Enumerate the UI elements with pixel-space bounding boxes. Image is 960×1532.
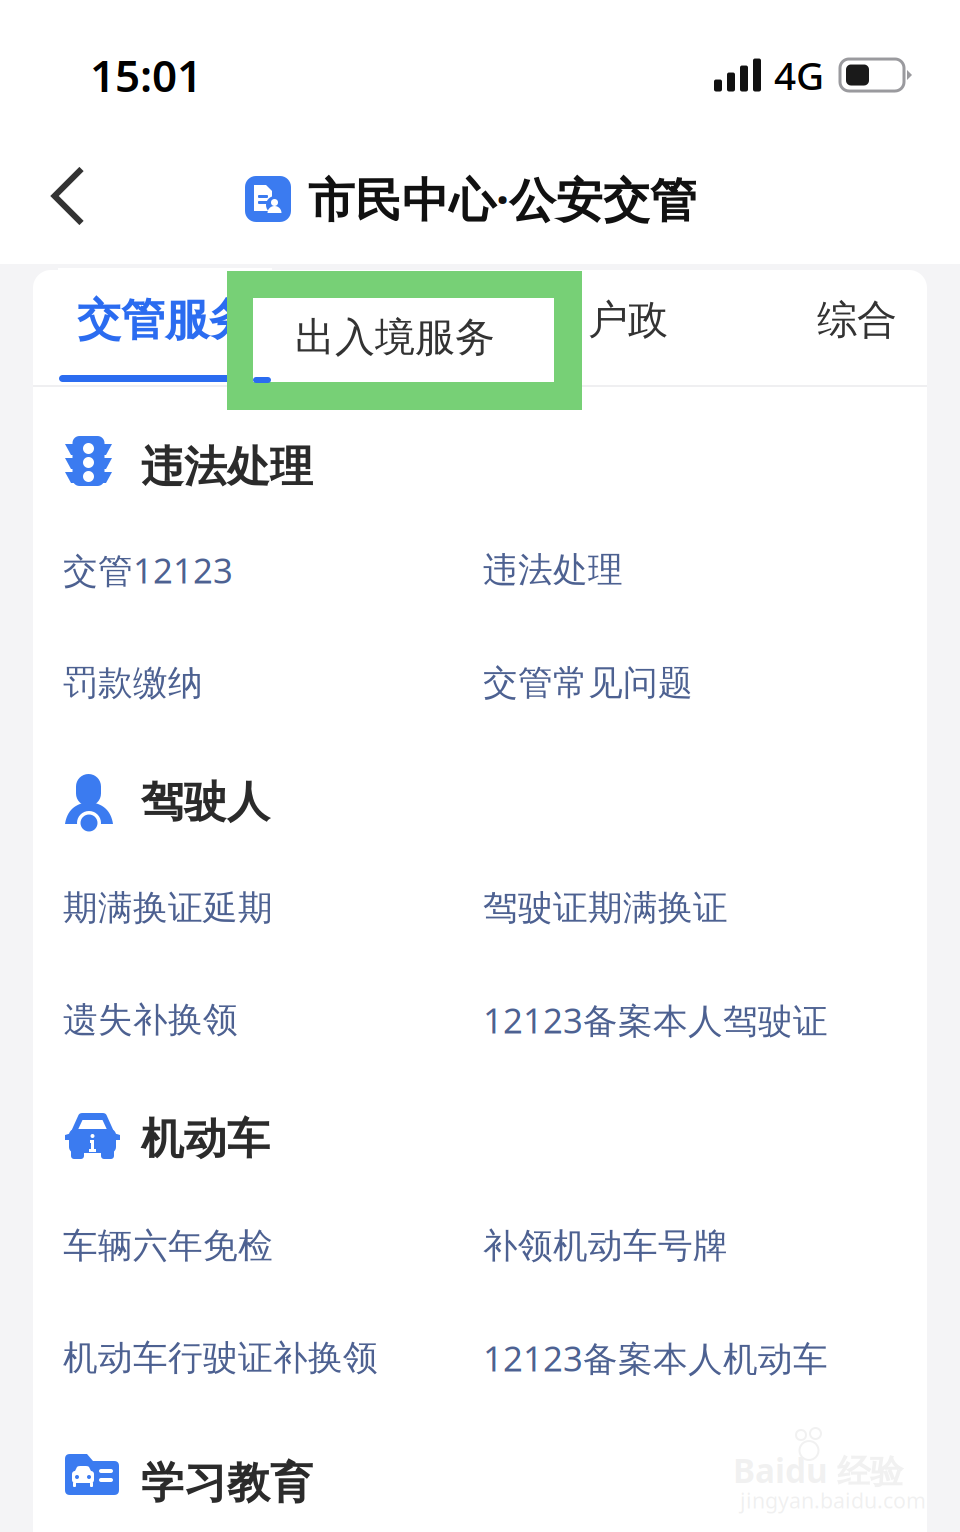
staticText: 交管常见问题 — [483, 662, 693, 704]
staticText: 学习教育 — [141, 1457, 313, 1509]
button[interactable]: 12123备案本人机动车 — [483, 1331, 893, 1385]
button[interactable]: 出入境服务 — [275, 268, 519, 372]
staticText: 补领机动车号牌 — [483, 1225, 728, 1267]
staticText: 期满换证延期 — [63, 887, 273, 929]
staticText: 交管服务 — [77, 293, 253, 347]
staticText: 机动车 — [141, 1113, 270, 1165]
button[interactable]: 违法处理 — [483, 543, 893, 597]
staticText: 综合 — [817, 295, 897, 344]
button[interactable]: 户政 — [562, 268, 694, 372]
button[interactable]: 驾驶证期满换证 — [483, 881, 893, 935]
staticText: 机动车行驶证补换领 — [63, 1337, 378, 1379]
staticText: 12123备案本人驾驶证 — [483, 997, 828, 1043]
staticText: 市民中心·公安交管 — [308, 168, 697, 230]
button[interactable]: Back — [23, 151, 113, 241]
staticText: 遗失补换领 — [63, 999, 238, 1041]
button[interactable]: 交管服务 — [58, 268, 272, 390]
staticText: 12123备案本人机动车 — [483, 1335, 828, 1381]
button[interactable]: 罚款缴纳 — [63, 656, 473, 710]
staticText: 交管12123 — [63, 547, 233, 593]
button[interactable]: 交管12123 — [63, 543, 473, 597]
button[interactable]: 车辆六年免检 — [63, 1219, 473, 1273]
button[interactable]: 12123备案本人驾驶证 — [483, 993, 893, 1047]
staticText: 4G — [774, 49, 824, 101]
staticText: 户政 — [588, 295, 668, 344]
staticText: 罚款缴纳 — [63, 662, 203, 704]
button[interactable]: 机动车行驶证补换领 — [63, 1331, 473, 1385]
button[interactable]: 遗失补换领 — [63, 993, 473, 1047]
staticText: jingyan.baidu.com — [740, 1486, 926, 1514]
staticText: 违法处理 — [141, 441, 313, 493]
staticText: 出入境服务 — [295, 313, 495, 362]
staticText: 15:01 — [90, 46, 202, 104]
staticText: 驾驶人 — [141, 776, 270, 828]
button[interactable]: 交管常见问题 — [483, 656, 893, 710]
staticText: 驾驶证期满换证 — [483, 887, 728, 929]
button[interactable]: 期满换证延期 — [63, 881, 473, 935]
staticText: Baidu 经验 — [733, 1448, 903, 1492]
staticText: 车辆六年免检 — [63, 1225, 273, 1267]
button[interactable]: 补领机动车号牌 — [483, 1219, 893, 1273]
staticText: 出入境服务 — [297, 295, 497, 344]
button[interactable]: 综合 — [791, 268, 923, 372]
staticText: 违法处理 — [483, 549, 623, 591]
